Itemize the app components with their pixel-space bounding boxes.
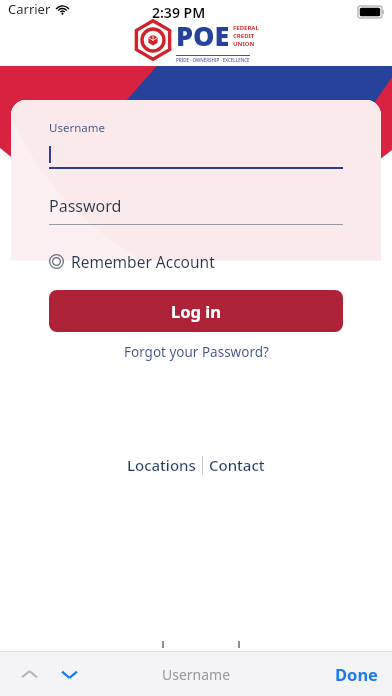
staticText: CREDIT — [233, 32, 255, 40]
staticText: UNION — [233, 40, 255, 48]
staticText: Username — [49, 120, 105, 136]
staticText: PRIDE · OWNERSHIP · EXCELLENCE — [176, 57, 250, 63]
staticText: Username — [162, 665, 231, 684]
button[interactable]: Forgot your Password? — [49, 343, 343, 361]
button[interactable]: Log in — [49, 290, 343, 332]
button[interactable]: Remember Account — [49, 248, 215, 275]
button[interactable]: Done — [321, 655, 392, 693]
button[interactable]: Contact — [203, 451, 271, 479]
staticText: Password — [49, 195, 122, 217]
staticText: Forgot your Password? — [124, 343, 269, 361]
button[interactable]: Locations — [121, 451, 202, 479]
staticText: Remember Account — [71, 251, 215, 272]
staticText: POE — [176, 17, 230, 54]
staticText: Carrier — [8, 0, 51, 18]
staticText: Log in — [171, 300, 221, 322]
staticText: Done — [335, 663, 378, 685]
button[interactable]: Next field — [54, 659, 84, 689]
staticText: FEDERAL — [233, 24, 259, 32]
staticText: Contact — [209, 455, 265, 475]
button[interactable]: Previous field — [14, 659, 44, 689]
staticText: 2:39 PM — [152, 3, 206, 22]
staticText: Locations — [127, 455, 196, 475]
